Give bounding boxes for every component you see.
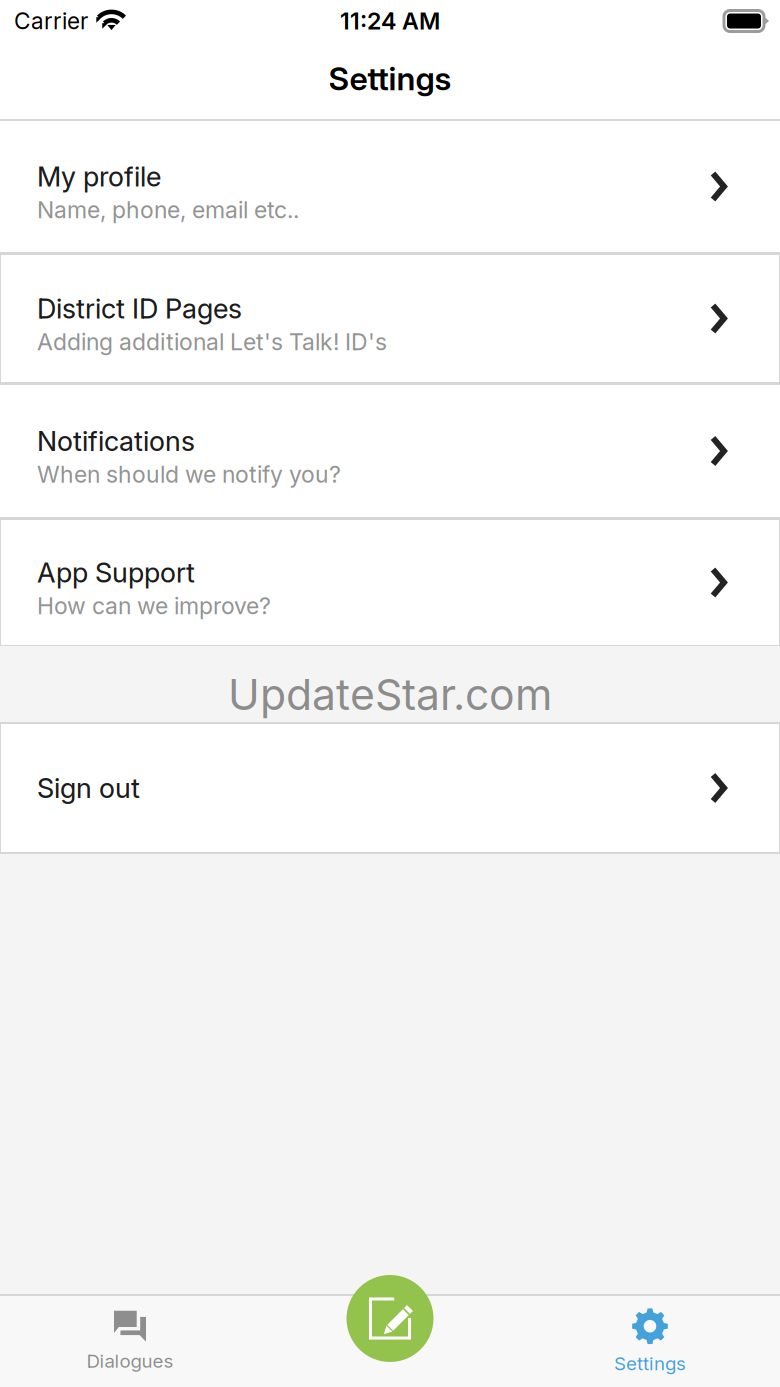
button[interactable]: Sign out — [0, 723, 780, 853]
staticText: District ID Pages — [37, 292, 242, 325]
staticText: Name, phone, email etc.. — [37, 196, 299, 224]
button[interactable]: My profile — [0, 121, 780, 252]
button[interactable]: District ID Pages — [0, 254, 780, 383]
staticText: App Support — [37, 556, 195, 589]
staticText: How can we improve? — [37, 592, 271, 620]
staticText: Carrier — [14, 7, 88, 35]
button[interactable]: App Support — [0, 519, 780, 646]
staticText: Dialogues — [86, 1350, 173, 1372]
button[interactable]: Dialogues — [0, 1296, 260, 1387]
staticText: Adding additional Let's Talk! ID's — [37, 328, 387, 356]
staticText: 11:24 AM — [340, 7, 440, 35]
button[interactable]: Compose — [346, 1275, 433, 1362]
staticText: Notifications — [37, 425, 195, 457]
button[interactable]: Notifications — [0, 385, 780, 517]
staticText: Settings — [614, 1352, 686, 1375]
staticText: Settings — [328, 59, 451, 98]
staticText: My profile — [37, 160, 161, 193]
button[interactable]: Settings — [520, 1296, 780, 1387]
staticText: When should we notify you? — [37, 460, 341, 488]
staticText: Sign out — [37, 771, 140, 804]
staticText: UpdateStar.com — [228, 669, 552, 720]
